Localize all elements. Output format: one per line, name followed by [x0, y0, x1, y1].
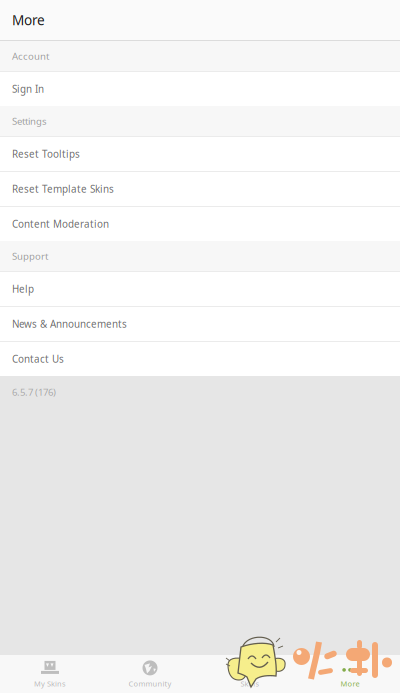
staticText: Reset Tooltips [12, 147, 80, 161]
staticText: Community [128, 678, 171, 689]
staticText: Account [12, 49, 49, 63]
button[interactable]: Content Moderation [0, 207, 400, 241]
staticText: Content Moderation [12, 217, 109, 231]
staticText: Contact Us [12, 352, 64, 366]
button[interactable]: Sign In [0, 72, 400, 106]
button[interactable]: Reset Tooltips [0, 137, 400, 171]
button[interactable]: Skins [200, 655, 300, 693]
staticText: Settings [12, 114, 47, 128]
button[interactable]: More [300, 655, 400, 693]
button[interactable]: Help [0, 272, 400, 306]
staticText: Support [12, 249, 48, 263]
button[interactable]: Reset Template Skins [0, 172, 400, 206]
staticText: Skins [240, 678, 259, 689]
staticText: 6.5.7 (176) [12, 385, 56, 399]
staticText: Help [12, 282, 34, 296]
staticText: Reset Template Skins [12, 182, 114, 196]
button[interactable]: Contact Us [0, 342, 400, 376]
button[interactable]: Community [100, 655, 200, 693]
staticText: Sign In [12, 82, 44, 96]
staticText: My Skins [34, 678, 66, 689]
button[interactable]: News & Announcements [0, 307, 400, 341]
staticText: More [340, 678, 359, 689]
staticText: News & Announcements [12, 317, 127, 331]
staticText: More [12, 11, 45, 29]
button[interactable]: My Skins [0, 655, 100, 693]
